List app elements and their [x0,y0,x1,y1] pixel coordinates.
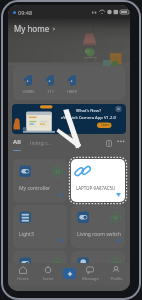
button[interactable]: Learn more [101,123,116,129]
button[interactable]: My controller [13,159,67,202]
staticText: Profile [110,276,123,281]
button[interactable]: Switch [13,251,67,291]
staticText: Living room switch [77,231,122,238]
staticText: U8086 [22,89,35,94]
button[interactable]: Scene [37,266,59,281]
staticText: eWeLink Camera App V1.2.0 [61,115,116,121]
button[interactable]: My home [14,23,56,34]
staticText: Scene [42,276,54,281]
staticText: Learn more [101,123,116,129]
button[interactable]: All [13,138,21,151]
staticText: Home [17,276,29,281]
staticText: What's New? [76,108,101,114]
button[interactable]: H889 [61,75,83,94]
button[interactable]: U8086 [17,75,39,94]
button[interactable]: Light3 [13,205,67,248]
button[interactable]: Living room switch [71,205,125,248]
staticText: Message [82,276,99,281]
staticText: LAPTOP-9A87AC5U [76,185,116,191]
staticText: Switch [19,277,35,284]
button[interactable]: Home [12,266,34,281]
button[interactable]: Switch layout [106,140,112,147]
button[interactable]: What's New? [12,104,126,134]
button[interactable]: LAPTOP-9A87AC5U [71,159,125,202]
staticText: H889 [67,89,77,94]
staticText: Light3 [19,231,34,238]
staticText: My home [14,23,50,34]
staticText: Sun lamp [77,277,100,284]
button[interactable]: Add device [63,268,76,279]
staticText: 111 [47,89,54,94]
button[interactable]: Message [79,266,101,281]
staticText: My controller [19,185,51,192]
button[interactable]: More options [117,138,125,146]
button[interactable]: living r... [30,138,52,146]
staticText: All [13,138,21,146]
button[interactable]: 111 [39,75,61,94]
button[interactable]: Sun lamp [71,251,125,291]
button[interactable]: Profile [105,266,127,281]
staticText: 09:48 [18,9,33,16]
